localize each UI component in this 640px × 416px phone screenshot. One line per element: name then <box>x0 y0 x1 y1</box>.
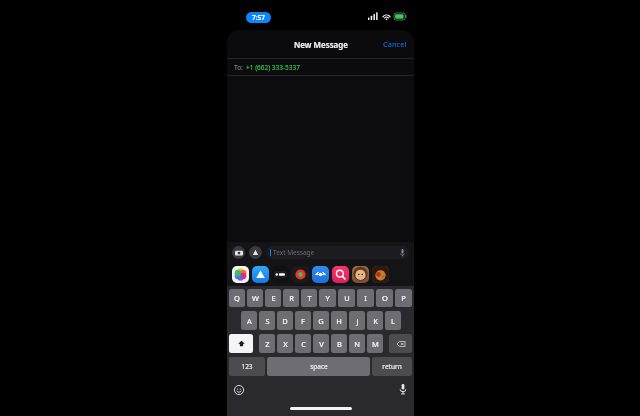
staticText: U <box>344 293 350 303</box>
staticText: space <box>310 362 328 371</box>
staticText: Y <box>325 293 330 303</box>
button[interactable]: P <box>395 289 412 307</box>
staticText: W <box>252 293 259 303</box>
button[interactable]: Images <box>332 266 349 283</box>
staticText: New Message <box>294 39 348 50</box>
button[interactable]: Shift <box>229 334 253 353</box>
staticText: V <box>319 339 324 349</box>
staticText: I <box>364 293 367 303</box>
button[interactable]: Cancel <box>376 34 414 54</box>
staticText: C <box>301 339 306 349</box>
button[interactable]: Dictate <box>399 384 407 395</box>
staticText: H <box>336 316 342 326</box>
button[interactable]: M <box>367 334 383 353</box>
button[interactable]: Apps <box>249 246 262 259</box>
staticText: Q <box>234 293 240 303</box>
staticText: K <box>373 316 378 326</box>
staticText: return <box>382 362 402 371</box>
button[interactable]: Z <box>259 334 275 353</box>
button[interactable]: L <box>385 311 401 330</box>
button[interactable]: Photo <box>372 266 389 283</box>
button[interactable]: I <box>357 289 374 307</box>
button[interactable]: X <box>277 334 293 353</box>
button[interactable]: App Store <box>252 266 269 283</box>
button[interactable]: R <box>283 289 299 307</box>
button[interactable]: K <box>367 311 383 330</box>
button[interactable]: Emoji <box>234 385 244 395</box>
staticText: L <box>391 316 395 326</box>
button[interactable]: V <box>313 334 329 353</box>
button[interactable]: Q <box>229 289 245 307</box>
button[interactable]: C <box>295 334 311 353</box>
staticText: Text Message <box>273 248 315 257</box>
button[interactable]: B <box>331 334 347 353</box>
staticText: F <box>301 316 305 326</box>
staticText: E <box>271 293 276 303</box>
button[interactable]: J <box>349 311 365 330</box>
button[interactable]: 123 <box>229 357 265 376</box>
button[interactable]: Y <box>319 289 336 307</box>
staticText: To: <box>234 63 243 72</box>
button[interactable]: E <box>265 289 281 307</box>
button[interactable]: W <box>247 289 263 307</box>
button[interactable]: Backspace <box>389 334 412 353</box>
button[interactable]: U <box>338 289 355 307</box>
staticText: P <box>401 293 406 303</box>
staticText: G <box>318 316 324 326</box>
staticText: A <box>247 316 252 326</box>
button[interactable]: D <box>277 311 293 330</box>
staticText: X <box>283 339 288 349</box>
staticText: N <box>354 339 360 349</box>
button[interactable]: Apple Cash <box>272 266 289 283</box>
button[interactable]: Memoji <box>352 266 369 283</box>
button[interactable]: To: <box>227 59 414 75</box>
button[interactable]: O <box>376 289 393 307</box>
staticText: R <box>289 293 294 303</box>
staticText: 7:57 <box>252 13 265 22</box>
staticText: S <box>265 316 270 326</box>
button[interactable]: Digital Touch <box>312 266 329 283</box>
button[interactable]: A <box>241 311 257 330</box>
staticText: 123 <box>241 362 253 371</box>
button[interactable]: T <box>301 289 317 307</box>
button[interactable]: space <box>267 357 370 376</box>
staticText: D <box>282 316 288 326</box>
button[interactable]: Text Message <box>266 246 409 259</box>
staticText: T <box>307 293 312 303</box>
button[interactable]: S <box>259 311 275 330</box>
button[interactable]: G <box>313 311 329 330</box>
button[interactable]: H <box>331 311 347 330</box>
staticText: Z <box>265 339 270 349</box>
button[interactable]: Camera <box>232 246 245 259</box>
staticText: B <box>337 339 342 349</box>
staticText: Cancel <box>383 39 407 49</box>
staticText: +1 (662) 333-5337 <box>246 63 300 72</box>
button[interactable]: N <box>349 334 365 353</box>
button[interactable]: F <box>295 311 311 330</box>
staticText: M <box>372 339 379 349</box>
staticText: J <box>356 316 359 326</box>
button[interactable]: Music <box>292 266 309 283</box>
button[interactable]: Photos <box>232 266 249 283</box>
staticText: O <box>382 293 388 303</box>
button[interactable]: return <box>372 357 412 376</box>
